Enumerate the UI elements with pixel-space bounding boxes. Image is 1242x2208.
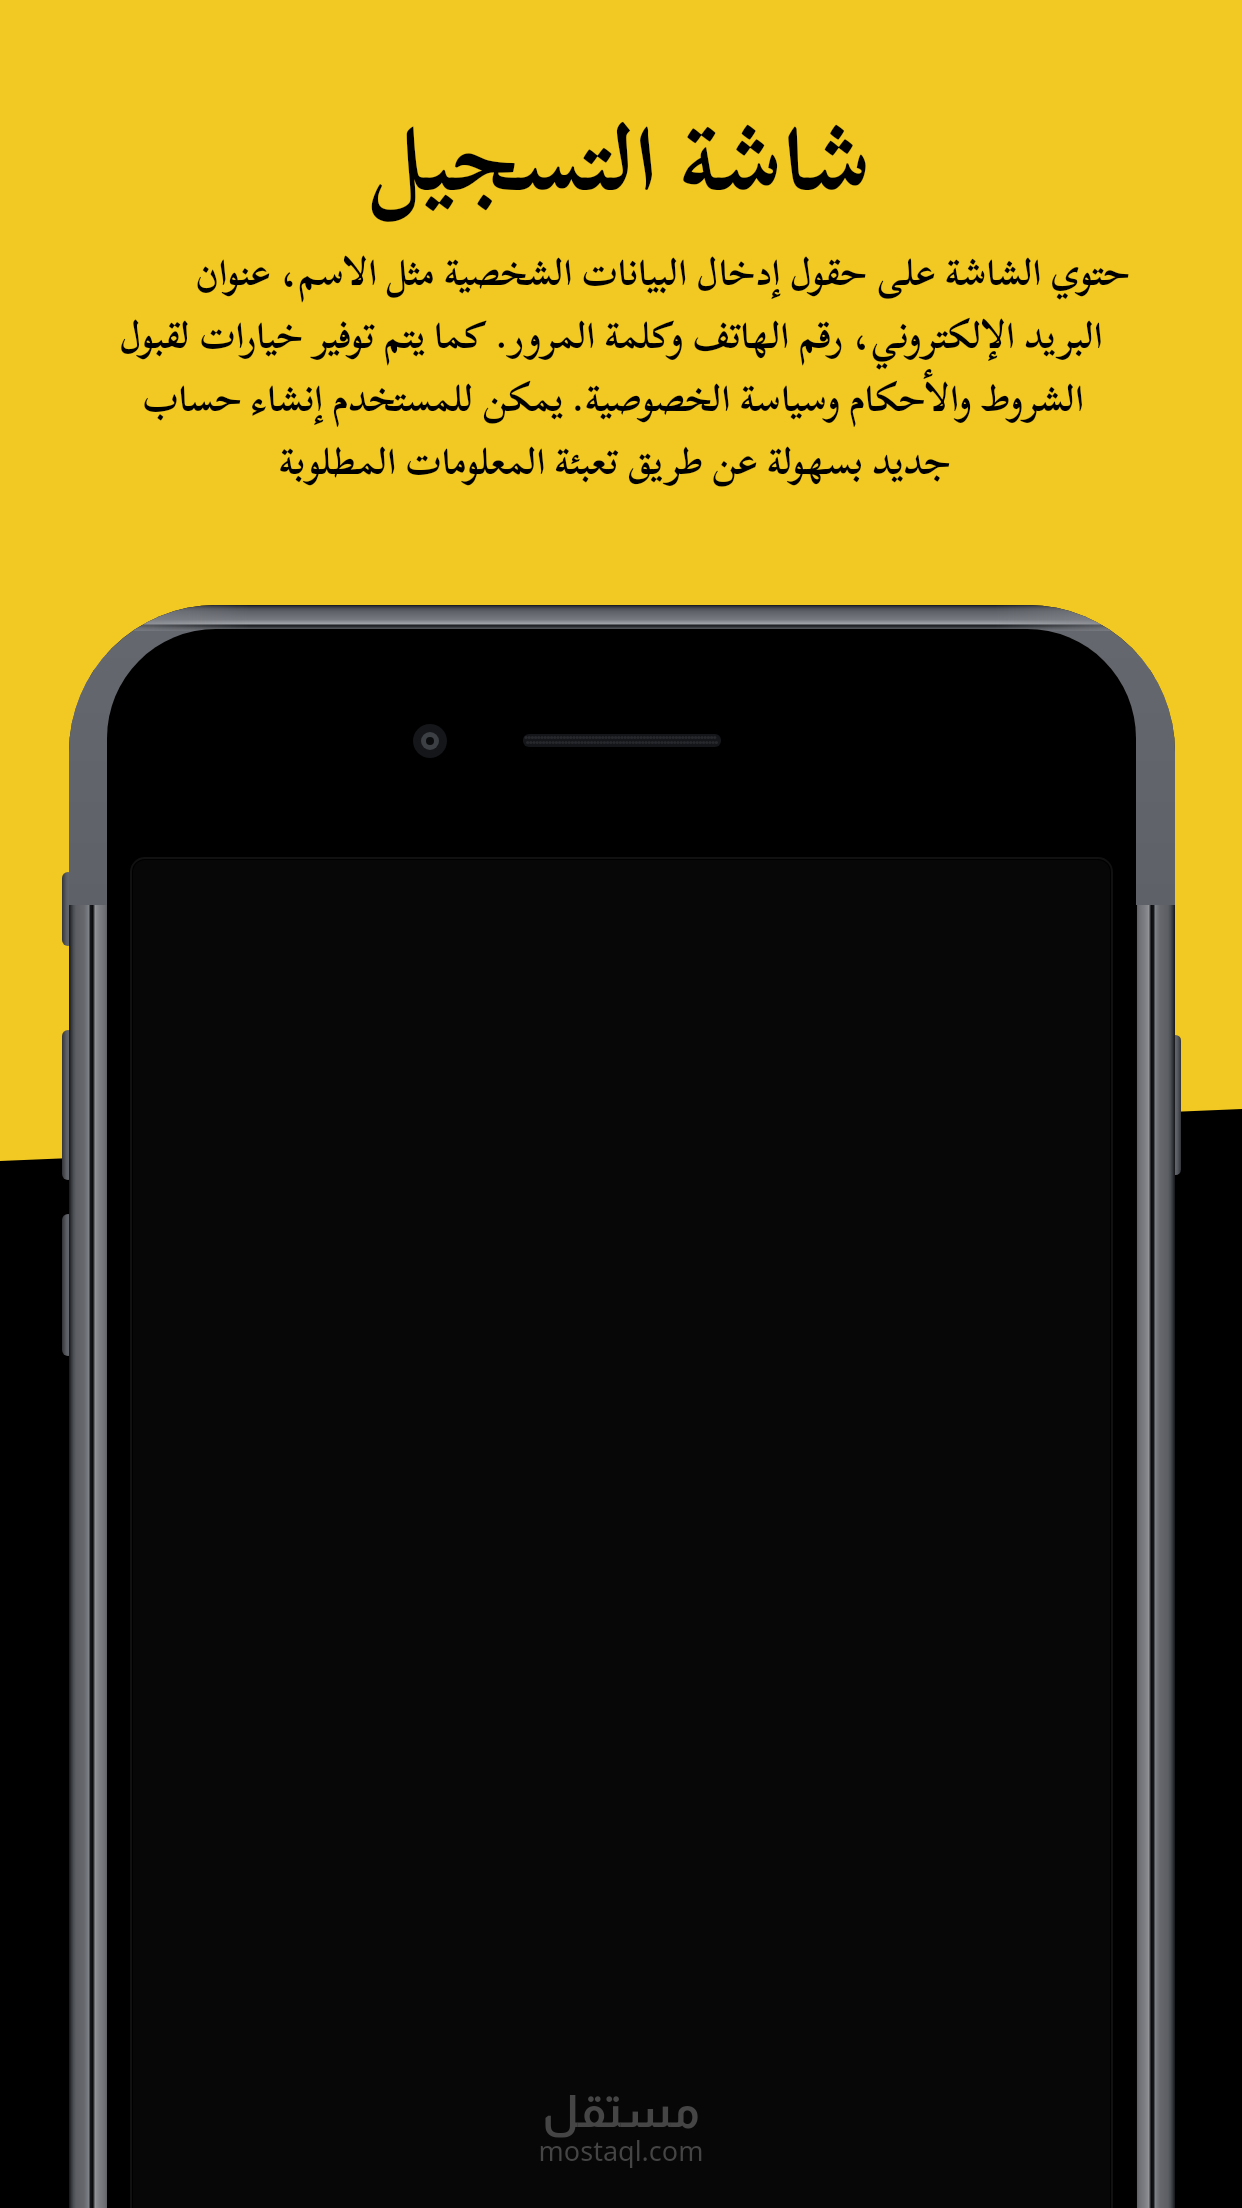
staticText: شاشة التسجيل <box>0 66 1242 254</box>
button[interactable]: mostaql.com <box>520 2080 722 2176</box>
staticText: جديد بسهولة عن طريق تعبئة المعلومات المط… <box>0 424 1236 499</box>
staticText: الشروط والأحكام وسياسة الخصوصية. يمكن لل… <box>0 361 1234 436</box>
staticText: mostaql.com <box>520 2132 722 2169</box>
staticText: حتوي الشاشة على حقول إدخال البيانات الشخ… <box>42 235 1242 310</box>
button[interactable]: Registration screen preview <box>107 629 1136 2208</box>
staticText: مستقل <box>520 2086 722 2136</box>
staticText: البريد الإلكتروني، رقم الهاتف وكلمة المر… <box>0 298 1232 373</box>
